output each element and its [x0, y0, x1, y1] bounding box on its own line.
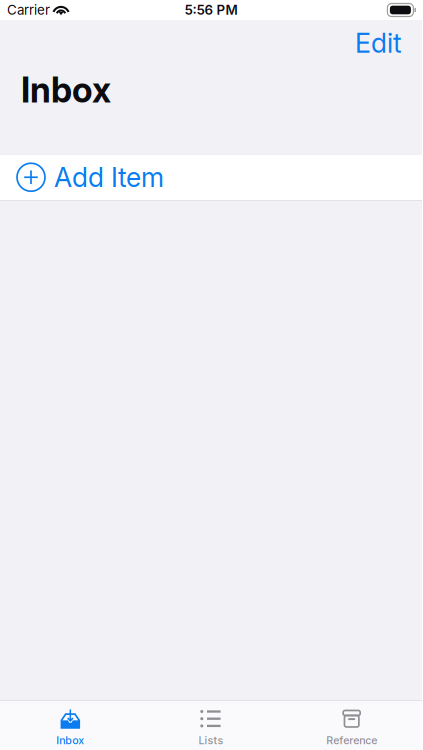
staticText: Add Item — [54, 161, 164, 193]
staticText: 5:56 PM — [184, 2, 237, 18]
button[interactable]: Lists — [141, 700, 281, 750]
staticText: Inbox — [21, 70, 111, 110]
staticText: Carrier — [7, 2, 50, 18]
button[interactable]: Edit — [335, 21, 422, 65]
staticText: Reference — [326, 734, 377, 747]
button[interactable]: Reference — [281, 700, 422, 750]
button[interactable]: Add Item — [0, 154, 422, 200]
button[interactable]: Inbox — [0, 700, 141, 750]
staticText: Lists — [198, 734, 223, 747]
staticText: Inbox — [56, 734, 84, 747]
staticText: Edit — [355, 27, 402, 59]
